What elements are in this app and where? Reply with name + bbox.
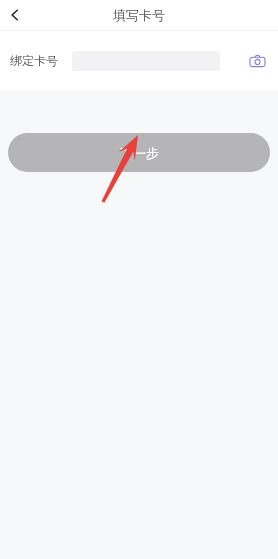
staticText: 绑定卡号 <box>10 53 58 68</box>
button[interactable]: Back <box>0 0 30 30</box>
button[interactable]: 绑定卡号 <box>0 31 278 90</box>
staticText: 填写卡号 <box>113 7 165 23</box>
button[interactable]: 下一步 <box>8 133 270 172</box>
button[interactable]: Scan card with camera <box>244 48 270 74</box>
staticText: 下一步 <box>120 145 159 161</box>
